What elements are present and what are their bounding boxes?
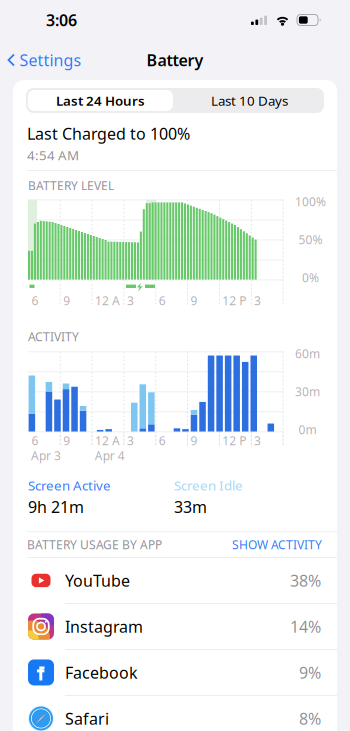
- button[interactable]: SHOW ACTIVITY: [232, 537, 322, 552]
- staticText: YouTube: [65, 570, 130, 591]
- staticText: Screen Active: [28, 476, 111, 494]
- staticText: 14%: [290, 616, 321, 637]
- staticText: Last Charged to 100%: [27, 123, 190, 144]
- staticText: Battery: [146, 49, 203, 71]
- staticText: Apr 4: [95, 447, 125, 463]
- staticText: Apr 3: [31, 447, 61, 463]
- staticText: ACTIVITY: [28, 329, 79, 344]
- staticText: 4:54 AM: [27, 146, 79, 164]
- staticText: 6: [31, 293, 38, 308]
- staticText: 12 P: [222, 433, 246, 448]
- staticText: Screen Idle: [174, 476, 243, 494]
- staticText: 60m: [295, 345, 320, 361]
- staticText: 3:06: [46, 9, 77, 31]
- staticText: 0%: [302, 270, 319, 286]
- staticText: Instagram: [65, 616, 143, 637]
- staticText: 3: [254, 433, 261, 448]
- staticText: 12 A: [95, 293, 120, 308]
- staticText: 9: [63, 433, 70, 448]
- staticText: Settings: [19, 49, 81, 71]
- button[interactable]: Last 10 Days: [175, 88, 324, 113]
- staticText: 33m: [174, 496, 207, 517]
- staticText: 9: [190, 433, 197, 448]
- button[interactable]: Instagram: [13, 604, 337, 650]
- button[interactable]: Settings: [0, 42, 81, 78]
- staticText: 3: [127, 293, 134, 308]
- staticText: Safari: [65, 708, 109, 729]
- button[interactable]: Facebook: [13, 650, 337, 696]
- staticText: Facebook: [65, 662, 138, 683]
- staticText: Last 24 Hours: [56, 92, 145, 109]
- staticText: 50%: [298, 232, 322, 247]
- staticText: 12 A: [95, 433, 120, 448]
- button[interactable]: YouTube: [13, 558, 337, 604]
- staticText: 6: [159, 293, 166, 308]
- staticText: 8%: [299, 708, 321, 729]
- staticText: BATTERY LEVEL: [28, 178, 114, 194]
- staticText: 0m: [298, 422, 316, 437]
- staticText: 30m: [295, 384, 320, 399]
- staticText: 100%: [295, 194, 326, 209]
- staticText: 3: [127, 433, 134, 448]
- staticText: SHOW ACTIVITY: [232, 537, 322, 552]
- staticText: BATTERY USAGE BY APP: [27, 537, 162, 552]
- staticText: 9%: [299, 662, 321, 683]
- staticText: 9: [63, 293, 70, 308]
- staticText: 9h 21m: [28, 496, 84, 517]
- staticText: 6: [31, 433, 38, 448]
- staticText: Last 10 Days: [211, 92, 288, 109]
- button[interactable]: Last 24 Hours: [26, 88, 175, 113]
- staticText: 12 P: [222, 293, 246, 308]
- staticText: 3: [254, 293, 261, 308]
- staticText: 38%: [290, 570, 321, 591]
- staticText: 9: [190, 293, 197, 308]
- staticText: 6: [159, 433, 166, 448]
- button[interactable]: Safari: [13, 696, 337, 731]
